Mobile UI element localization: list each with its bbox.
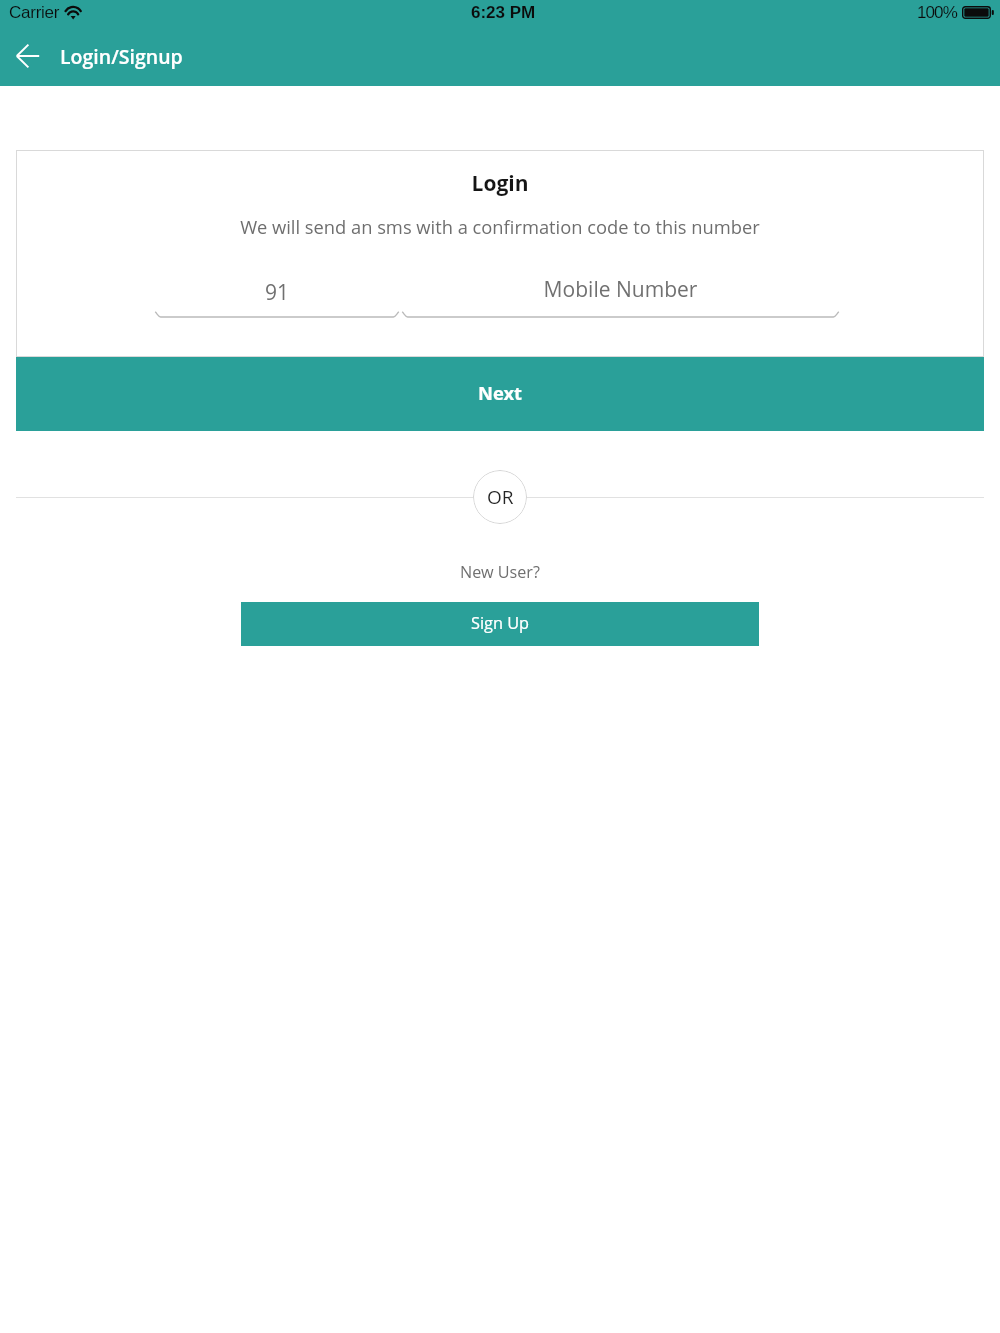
staticText: OR [487,484,514,510]
button[interactable]: Next [16,357,984,431]
staticText: Carrier [9,3,60,22]
staticText: Mobile Number [402,275,839,304]
staticText: 91 [155,278,399,307]
button[interactable]: Mobile Number [402,278,839,324]
button[interactable]: Back [4,32,52,80]
staticText: Login/Signup [60,43,183,70]
button[interactable]: Sign Up [241,602,759,646]
staticText: 6:23 PM [471,3,536,22]
button[interactable]: 91 [155,278,399,324]
staticText: We will send an sms with a confirmation … [16,214,984,239]
staticText: Next [478,380,523,405]
staticText: New User? [460,561,540,583]
staticText: Login [16,169,984,198]
staticText: Sign Up [471,612,530,634]
staticText: 100% [917,3,957,22]
